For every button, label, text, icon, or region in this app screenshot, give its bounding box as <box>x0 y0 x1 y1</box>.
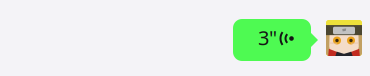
button[interactable]: 3" <box>233 19 318 61</box>
button[interactable]: Sender profile photo <box>326 20 362 56</box>
staticText: 3" <box>258 24 277 51</box>
